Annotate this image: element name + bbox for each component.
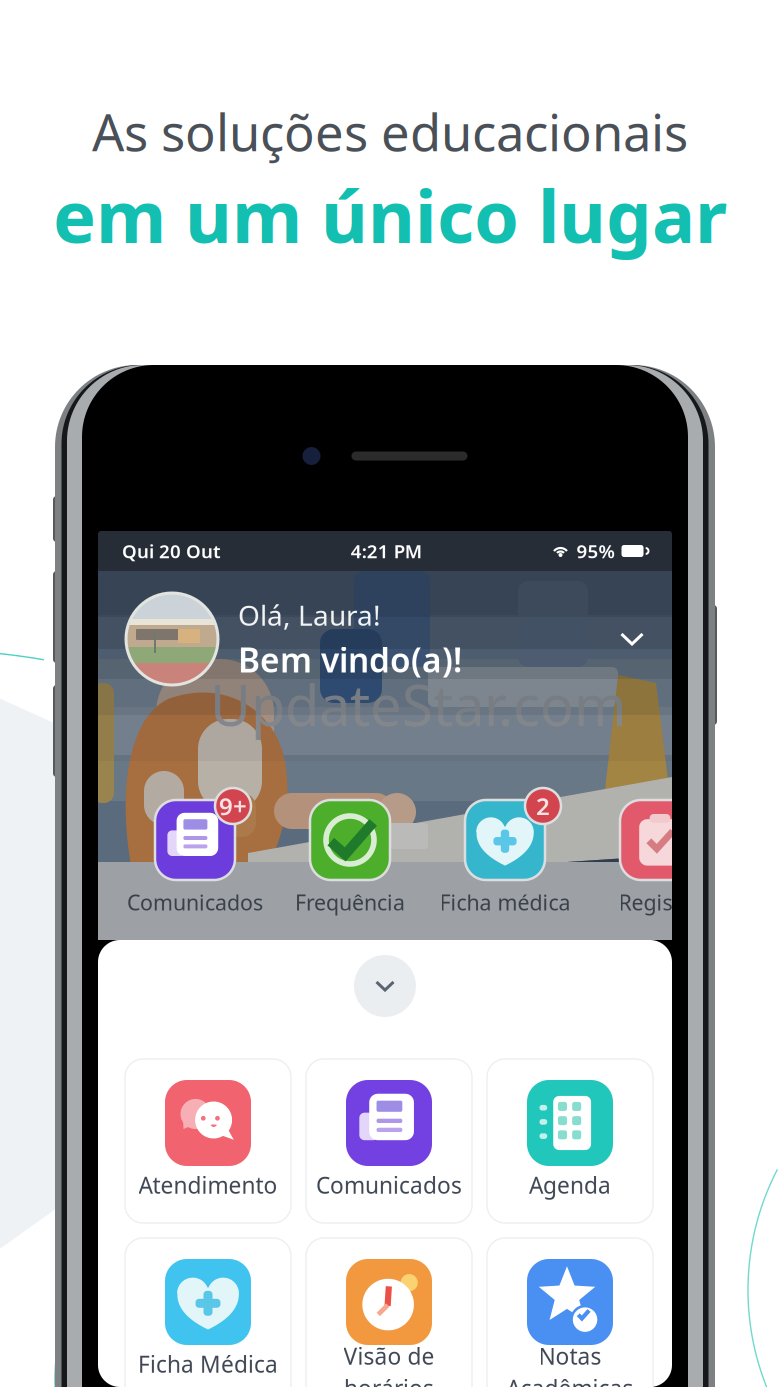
staticText: Visão de bbox=[343, 1341, 434, 1371]
staticText: As soluções educacionais bbox=[92, 98, 688, 165]
staticText: Qui 20 Out bbox=[122, 539, 221, 563]
staticText: 9+ bbox=[219, 790, 247, 822]
staticText: Acadêmicas bbox=[506, 1373, 633, 1387]
staticText: Agenda bbox=[529, 1170, 611, 1200]
button[interactable]: Ficha Médica bbox=[125, 1238, 291, 1387]
staticText: 4:21 PM bbox=[351, 539, 422, 563]
staticText: em um único lugar bbox=[53, 167, 727, 263]
staticText: Notas bbox=[538, 1341, 601, 1371]
staticText: Ficha médica bbox=[439, 888, 570, 916]
staticText: Registro bbox=[618, 888, 701, 916]
staticText: Olá, Laura! bbox=[238, 596, 381, 633]
button[interactable]: Notas bbox=[487, 1238, 653, 1387]
staticText: Comunicados bbox=[127, 888, 263, 916]
staticText: Frequência bbox=[295, 888, 405, 916]
staticText: horários bbox=[344, 1373, 434, 1387]
button[interactable] bbox=[354, 955, 416, 1017]
button[interactable]: Atendimento bbox=[125, 1059, 291, 1223]
button[interactable]: 9+ bbox=[117, 788, 272, 916]
staticText: 95% bbox=[576, 539, 614, 563]
button[interactable]: Frequência bbox=[272, 788, 427, 916]
button[interactable]: Comunicados bbox=[306, 1059, 472, 1223]
staticText: Ficha Médica bbox=[138, 1349, 278, 1379]
staticText: Comunicados bbox=[316, 1170, 462, 1200]
button[interactable]: Olá, Laura! bbox=[98, 571, 672, 685]
button[interactable]: Agenda bbox=[487, 1059, 653, 1223]
staticText: Bem vindo(a)! bbox=[238, 637, 462, 682]
button[interactable]: Visão de bbox=[306, 1238, 472, 1387]
staticText: UpdateStar.com bbox=[210, 667, 626, 741]
staticText: 2 bbox=[536, 790, 550, 822]
staticText: Atendimento bbox=[138, 1170, 277, 1200]
button[interactable]: 2 bbox=[427, 788, 582, 916]
button[interactable]: Registro bbox=[582, 788, 737, 916]
